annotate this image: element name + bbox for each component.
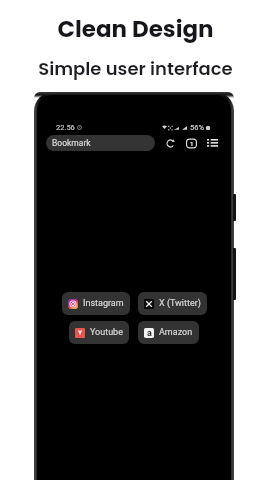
button[interactable]: Refresh [163,136,177,150]
button[interactable]: Instagram [62,292,130,315]
button[interactable]: X (Twitter) [138,292,207,315]
staticText: X (Twitter) [159,298,201,309]
staticText: Clean Design [57,13,214,45]
staticText: 1 [190,140,194,147]
staticText: Bookmark [52,138,91,148]
button[interactable]: a [138,321,199,344]
button[interactable]: Youtube [69,321,129,344]
button[interactable]: Menu [205,136,219,150]
button[interactable]: Bookmark [46,135,155,151]
staticText: a [147,328,152,338]
staticText: 56% [190,123,204,132]
staticText: Youtube [90,327,123,338]
staticText: Amazon [159,327,193,338]
button[interactable]: Tabs [184,136,198,150]
staticText: Simple user interface [38,56,233,81]
staticText: 22.56 [56,123,75,132]
staticText: Instagram [83,298,124,309]
